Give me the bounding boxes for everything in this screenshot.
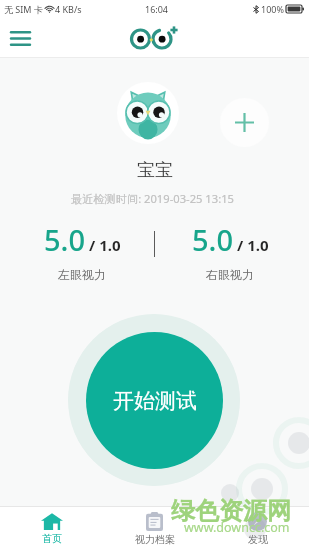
staticText: 最近检测时间: 2019-03-25 13:15 (71, 191, 234, 206)
staticText: / 1.0 (89, 235, 121, 255)
button[interactable]: 开始测试 (86, 332, 223, 469)
staticText: 左眼视力 (58, 267, 106, 282)
button[interactable]: 发现 (206, 507, 309, 550)
staticText: 4 KB/s (55, 3, 82, 15)
staticText: 无 SIM 卡 (4, 3, 43, 15)
button[interactable]: 首页 (0, 507, 103, 550)
staticText: 首页 (42, 532, 62, 545)
staticText: 5.0 (44, 220, 86, 259)
staticText: 绿色资源网 (171, 496, 291, 526)
button[interactable]: Add member (220, 98, 269, 147)
staticText: 右眼视力 (206, 267, 254, 282)
staticText: 宝宝 (137, 159, 173, 182)
staticText: / 1.0 (237, 235, 269, 255)
staticText: 视力档案 (135, 533, 175, 546)
staticText: 发现 (248, 533, 268, 546)
staticText: www.downcc.com (184, 519, 290, 536)
button[interactable]: 视力档案 (103, 507, 206, 550)
button[interactable]: Menu (4, 22, 36, 54)
staticText: 开始测试 (113, 388, 197, 414)
staticText: 16:04 (145, 3, 169, 15)
staticText: 100% (261, 3, 284, 15)
staticText: 5.0 (192, 220, 234, 259)
